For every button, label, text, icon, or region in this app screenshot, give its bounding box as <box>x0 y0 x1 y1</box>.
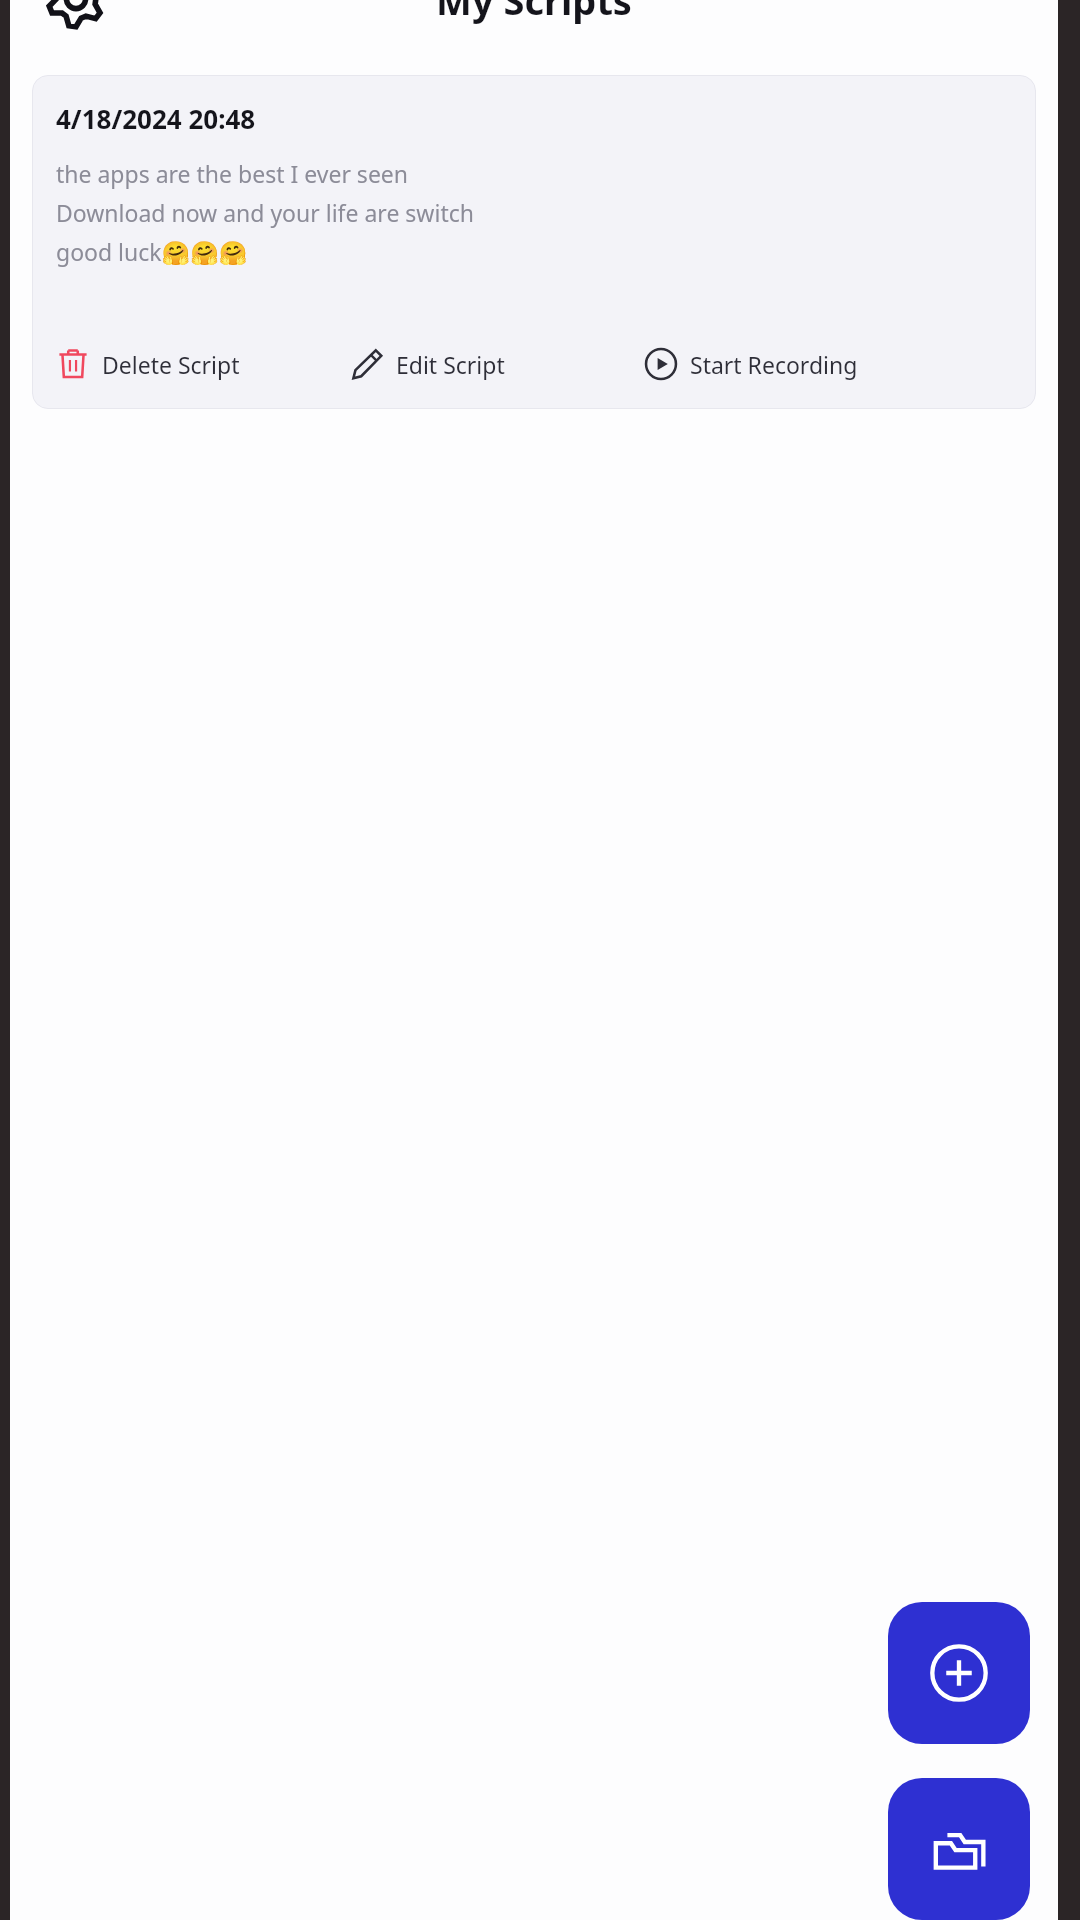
staticText: Edit Script <box>396 349 505 380</box>
staticText: Download now and your life are switch <box>56 197 474 228</box>
button[interactable]: Add script <box>888 1602 1030 1744</box>
button[interactable]: Edit Script <box>350 341 644 387</box>
staticText: 4/18/2024 20:48 <box>56 101 256 136</box>
staticText: good luck🤗🤗🤗 <box>56 236 248 267</box>
button[interactable]: Start Recording <box>644 341 1012 387</box>
staticText: Delete Script <box>102 349 240 380</box>
button[interactable]: Settings <box>40 0 112 32</box>
staticText: Start Recording <box>690 349 858 380</box>
button[interactable]: Open folder <box>888 1778 1030 1920</box>
staticText: the apps are the best I ever seen <box>56 158 409 189</box>
staticText: My Scripts <box>436 0 632 26</box>
button[interactable]: 4/18/2024 20:48 <box>32 75 1036 409</box>
button[interactable]: Delete Script <box>56 341 350 387</box>
